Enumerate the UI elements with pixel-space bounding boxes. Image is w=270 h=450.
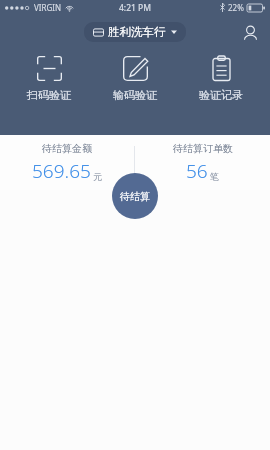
staticText: VIRGIN	[34, 2, 62, 13]
staticText: 扫码验证	[27, 88, 71, 102]
button[interactable]: 待结算订单数	[135, 138, 270, 188]
staticText: 4:21 PM	[119, 2, 152, 14]
staticText: 569.65	[32, 158, 91, 184]
button[interactable]: 扫码验证	[12, 54, 86, 104]
staticText: 笔	[210, 171, 219, 182]
staticText: 输码验证	[113, 88, 157, 102]
button[interactable]: 待结算金额	[0, 138, 134, 188]
staticText: 元	[93, 171, 102, 182]
staticText: 待结算	[120, 190, 150, 203]
staticText: 22%	[228, 2, 244, 13]
button[interactable]: 胜利洗车行	[84, 22, 186, 42]
staticText: 待结算订单数	[173, 142, 233, 155]
staticText: 56	[186, 158, 208, 184]
button[interactable]: Profile	[238, 20, 262, 44]
button[interactable]: 待结算	[112, 173, 158, 219]
staticText: 胜利洗车行	[108, 25, 166, 39]
staticText: 验证记录	[199, 88, 243, 102]
staticText: 待结算金额	[42, 142, 92, 155]
button[interactable]: 输码验证	[98, 54, 172, 104]
button[interactable]: 验证记录	[184, 54, 258, 104]
